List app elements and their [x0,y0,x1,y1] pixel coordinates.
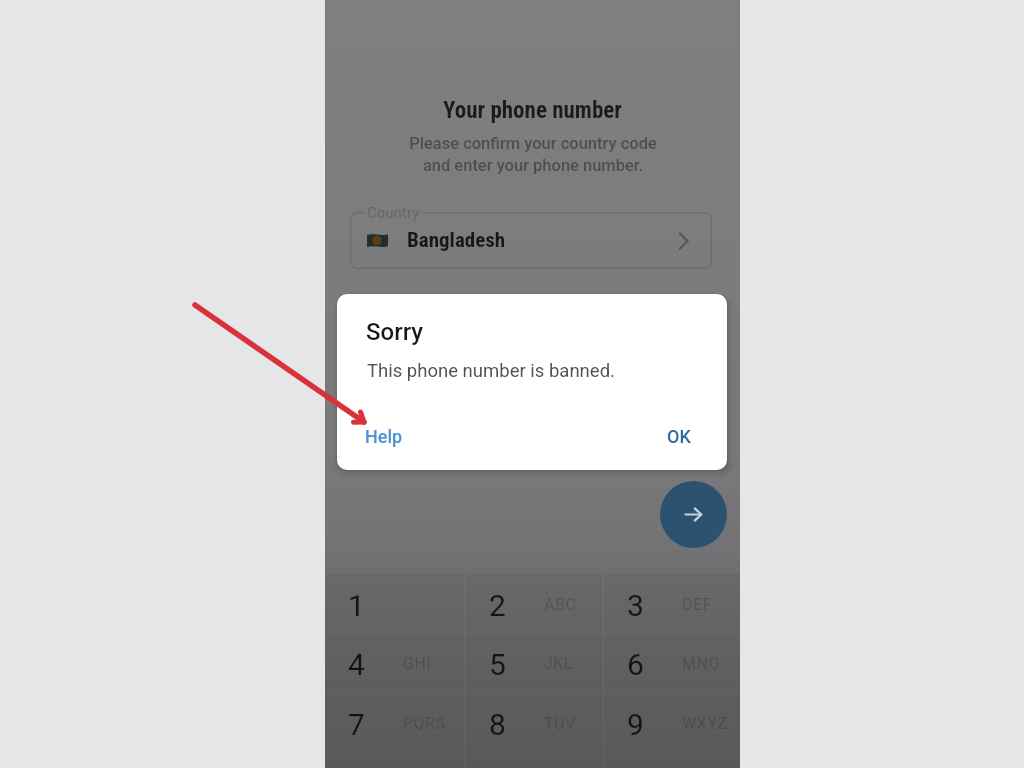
staticText: This phone number is banned. [367,360,615,382]
button[interactable]: Country [350,212,712,269]
button[interactable]: 4 [325,633,464,692]
staticText: 1 [348,588,365,623]
button[interactable]: 3 [604,574,740,632]
staticText: Bangladesh [407,228,506,253]
staticText: WXYZ [682,714,728,733]
staticText: 3 [627,588,644,623]
staticText: 7 [348,707,365,742]
staticText: Your phone number [443,97,622,124]
staticText: ABC [544,595,577,614]
other: Choose country [674,231,694,251]
button[interactable]: 7 [325,693,464,752]
button[interactable]: OK [667,426,691,447]
staticText: GHI [403,654,432,673]
other: Flag of Bangladesh [367,234,388,248]
staticText: MNO [682,654,720,673]
staticText: JKL [544,654,573,673]
button[interactable]: 1 [325,574,464,632]
staticText: Help [365,426,403,447]
button[interactable]: Help [365,426,403,447]
button[interactable]: 6 [604,633,740,692]
staticText: PQRS [403,714,446,733]
button[interactable]: 5 [466,633,602,692]
button[interactable]: 9 [604,693,740,752]
staticText: DEF [682,595,712,614]
staticText: 2 [489,588,506,623]
staticText: Country [367,204,420,222]
button[interactable]: 8 [466,693,602,752]
staticText: 8 [489,707,506,742]
staticText: OK [667,426,691,447]
staticText: Sorry [366,318,424,346]
staticText: 4 [348,647,365,682]
staticText: 9 [627,707,644,742]
staticText: TUV [544,714,576,733]
button[interactable]: 2 [466,574,602,632]
staticText: 5 [489,647,506,682]
button[interactable]: Next [660,481,727,548]
staticText: Please confirm your country code and ent… [409,134,657,175]
staticText: 6 [627,647,644,682]
